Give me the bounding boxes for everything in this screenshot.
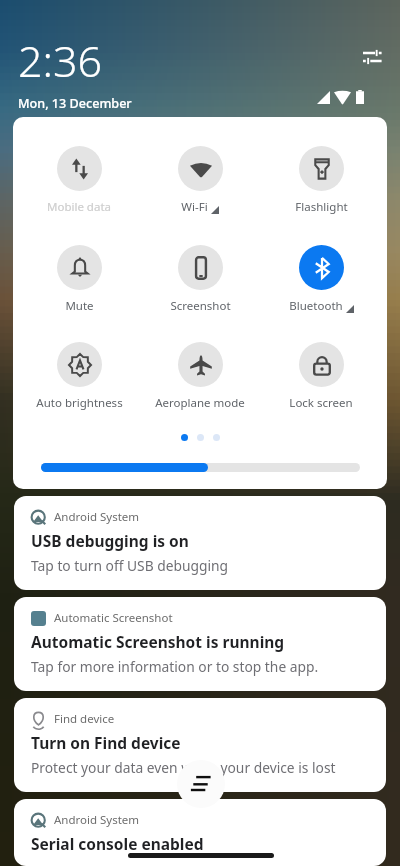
staticText: Lock screen <box>289 395 353 411</box>
staticText: Turn on Find device <box>31 732 181 753</box>
staticText: Screenshot <box>170 298 231 314</box>
staticText: Tap for more information or to stop the … <box>31 657 319 676</box>
staticText: Flashlight <box>295 199 348 215</box>
staticText: Wi-Fi <box>181 199 208 215</box>
button[interactable]: Auto brightness <box>24 342 134 411</box>
staticText: Auto brightness <box>36 395 123 411</box>
staticText: Mobile data <box>47 199 111 215</box>
staticText: 2:36 <box>18 31 103 90</box>
staticText: Aeroplane mode <box>155 395 245 411</box>
staticText: Automatic Screenshot <box>54 610 173 626</box>
button[interactable]: Find device <box>14 698 386 792</box>
staticText: Protect your data even when your device … <box>31 758 336 777</box>
button[interactable]: Settings <box>363 50 384 66</box>
staticText: Bluetooth <box>289 298 343 314</box>
button[interactable]: Aeroplane mode <box>145 342 255 411</box>
button[interactable]: Screenshot <box>145 245 255 314</box>
staticText: Find device <box>54 711 115 727</box>
button[interactable]: Clear all notifications <box>177 760 225 808</box>
staticText: Tap to turn off USB debugging <box>31 556 229 575</box>
button[interactable]: Automatic Screenshot <box>14 597 386 691</box>
staticText: Automatic Screenshot is running <box>31 631 285 652</box>
button[interactable]: Android System <box>14 799 386 866</box>
staticText: Serial console enabled <box>31 833 204 851</box>
staticText: Mon, 13 December <box>18 95 132 112</box>
button[interactable]: Flashlight <box>266 146 376 215</box>
button[interactable]: Wi-Fi <box>145 146 255 215</box>
button[interactable]: Android System <box>14 496 386 590</box>
button[interactable]: Lock screen <box>266 342 376 411</box>
button[interactable]: Mobile data <box>24 146 134 215</box>
button[interactable]: Mute <box>24 245 134 314</box>
staticText: USB debugging is on <box>31 530 189 551</box>
staticText: Android System <box>54 509 140 525</box>
staticText: Mute <box>65 298 94 314</box>
staticText: Android System <box>54 812 140 828</box>
button[interactable]: Bluetooth <box>266 245 376 314</box>
